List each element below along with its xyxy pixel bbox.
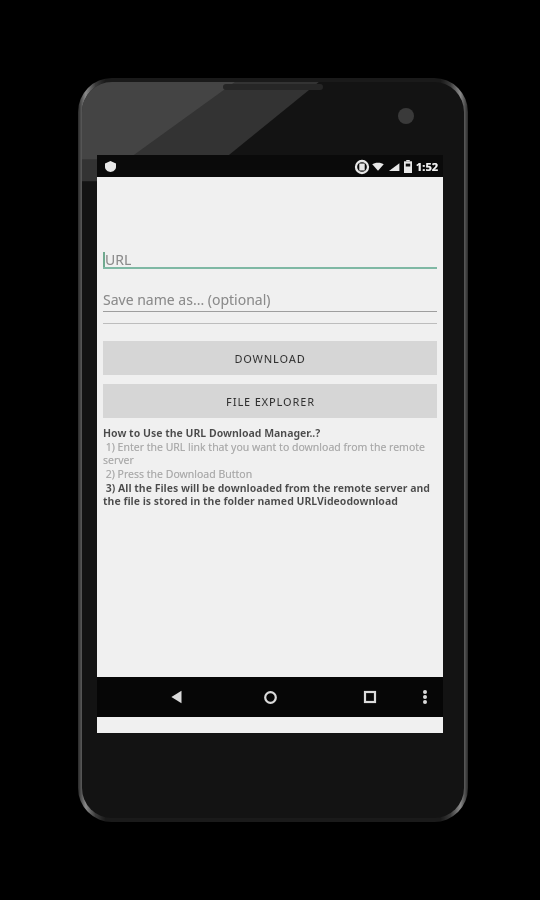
button[interactable]: FILE EXPLORER [103, 384, 437, 418]
staticText: DOWNLOAD [234, 351, 306, 366]
staticText: 3) All the Files will be downloaded from… [103, 481, 437, 508]
staticText: 2) Press the Download Button [103, 467, 253, 481]
staticText: URL [105, 250, 132, 269]
staticText: FILE EXPLORER [226, 394, 315, 409]
button[interactable]: Save name as... (optional) [103, 282, 437, 312]
staticText: How to Use the URL Download Manager..? [103, 426, 321, 440]
staticText: Save name as... (optional) [103, 290, 271, 309]
staticText: 1:52 [416, 159, 438, 174]
button[interactable]: Home [253, 680, 287, 714]
button[interactable]: Recent apps [353, 680, 387, 714]
button[interactable]: Back [160, 680, 194, 714]
staticText: 1) Enter the URL link that you want to d… [103, 440, 437, 467]
button[interactable]: DOWNLOAD [103, 341, 437, 375]
button[interactable]: More options [412, 684, 438, 710]
button[interactable]: URL [103, 239, 437, 269]
